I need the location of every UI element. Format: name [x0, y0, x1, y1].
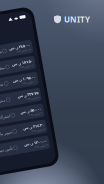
staticText: UNITY [64, 14, 90, 25]
staticText: ٥٥٠.٠٠ ر.س [16, 111, 37, 116]
staticText: محطة وقود [0, 97, 3, 101]
staticText: ١٢٠٠.٠٠ ر.س [14, 143, 37, 149]
staticText: شركة الاتصالات [0, 48, 8, 53]
staticText: اشتراك سنوي [0, 113, 5, 118]
staticText: ٧ مارس ٢٠٢٤ [24, 117, 37, 120]
staticText: سوبر ماركت [0, 129, 4, 134]
button[interactable]: سوبر ماركت [0, 125, 40, 138]
staticText: ١٨٦.٥٠ ر.س [16, 62, 37, 68]
button[interactable]: مطعم الشرقي [0, 60, 40, 73]
staticText: ٣٢٧.٧٥ ر.س [16, 95, 37, 100]
staticText: متجر الأجهزة [0, 81, 4, 85]
staticText: ١٠ مارس ٢٠٢٤ [23, 84, 37, 87]
staticText: ٨ مارس ٢٠٢٤ [24, 100, 37, 103]
button[interactable]: شركة الاتصالات [0, 44, 40, 57]
button[interactable]: اشتراك سنوي [0, 109, 40, 122]
staticText: ١٠٩٥.٠٠ ر.س [14, 79, 37, 84]
staticText: ١٢ مارس ٢٠٢٤ [23, 52, 37, 55]
staticText: ٢٤٥.٠٠ ر.س [16, 46, 37, 51]
staticText: ١١ مارس ٢٠٢٤ [23, 68, 37, 71]
button[interactable]: محطة وقود [0, 93, 40, 106]
staticText: ٥ مارس ٢٠٢٤ [24, 133, 37, 136]
staticText: مطعم الشرقي [0, 64, 8, 69]
staticText: ٣ مارس ٢٠٢٤ [24, 149, 37, 152]
button[interactable]: تأمين سيارة [0, 141, 40, 154]
staticText: ٢١٤.٣٠ ر.س [16, 127, 37, 132]
button[interactable]: متجر الأجهزة [0, 76, 40, 90]
